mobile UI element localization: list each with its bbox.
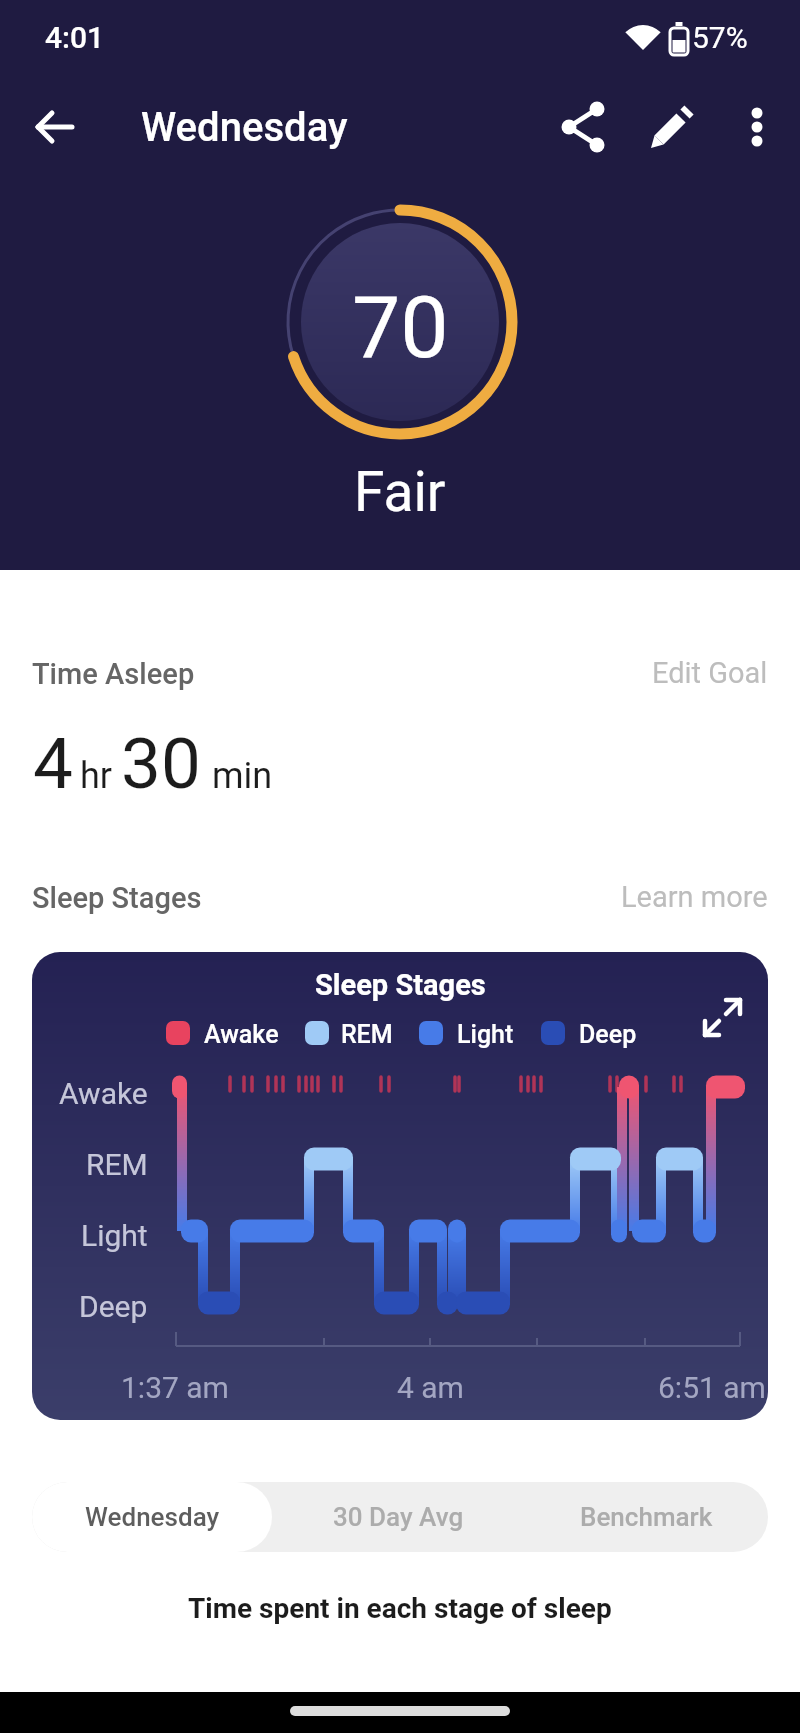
staticText: Time spent in each stage of sleep [188,1592,612,1625]
staticText: 30 [121,722,201,805]
staticText: 1:37 am [121,1370,229,1405]
button[interactable] [645,100,699,154]
staticText: Light [457,1020,514,1049]
staticText: Sleep Stages [32,881,202,915]
staticText: REM [86,1147,148,1182]
staticText: 4:01 [45,20,105,55]
staticText: 57% [692,20,748,55]
staticText: min [212,755,273,797]
staticText: Learn more [621,880,768,914]
staticText: 30 Day Avg [333,1502,464,1532]
staticText: 6:51 am [658,1370,766,1405]
staticText: Deep [579,1020,637,1049]
staticText: Light [81,1218,148,1253]
staticText: 4 am [397,1370,464,1405]
button[interactable]: Wednesday [32,1482,272,1552]
staticText: Awake [59,1076,148,1111]
button[interactable] [556,100,610,154]
staticText: Fair [354,460,446,524]
staticText: Time Asleep [32,657,195,691]
staticText: Wednesday [85,1502,220,1532]
staticText: Sleep Stages [315,968,486,1002]
staticText: Edit Goal [652,656,768,690]
staticText: 4 [33,722,73,805]
button[interactable]: Edit Goal [652,656,768,690]
staticText: Deep [79,1289,148,1324]
staticText: 70 [352,277,449,378]
staticText: Wednesday [141,104,348,151]
staticText: Awake [204,1020,279,1049]
button[interactable] [28,100,82,154]
button[interactable] [730,100,784,154]
staticText: Benchmark [580,1502,713,1532]
button[interactable]: Benchmark [525,1482,768,1552]
staticText: REM [341,1020,393,1049]
button[interactable]: Learn more [621,880,768,914]
staticText: hr [80,755,113,797]
button[interactable]: 30 Day Avg [272,1482,525,1552]
